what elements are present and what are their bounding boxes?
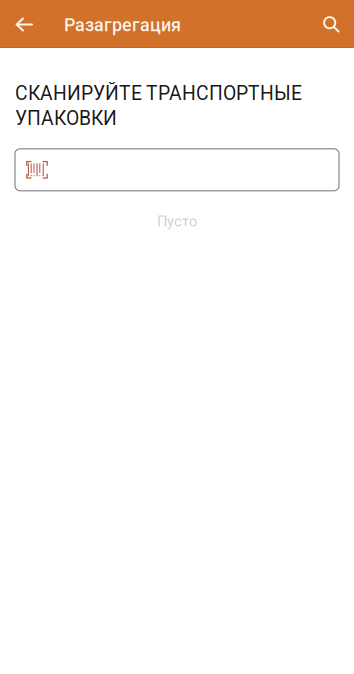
- staticText: СКАНИРУЙТЕ ТРАНСПОРТНЫЕ УПАКОВКИ: [15, 82, 302, 130]
- staticText: Разагрегация: [64, 14, 181, 36]
- button[interactable]: Search: [306, 0, 354, 47]
- button[interactable]: Scan barcode: [15, 149, 339, 191]
- button[interactable]: Back: [0, 0, 48, 47]
- staticText: Пусто: [157, 213, 197, 230]
